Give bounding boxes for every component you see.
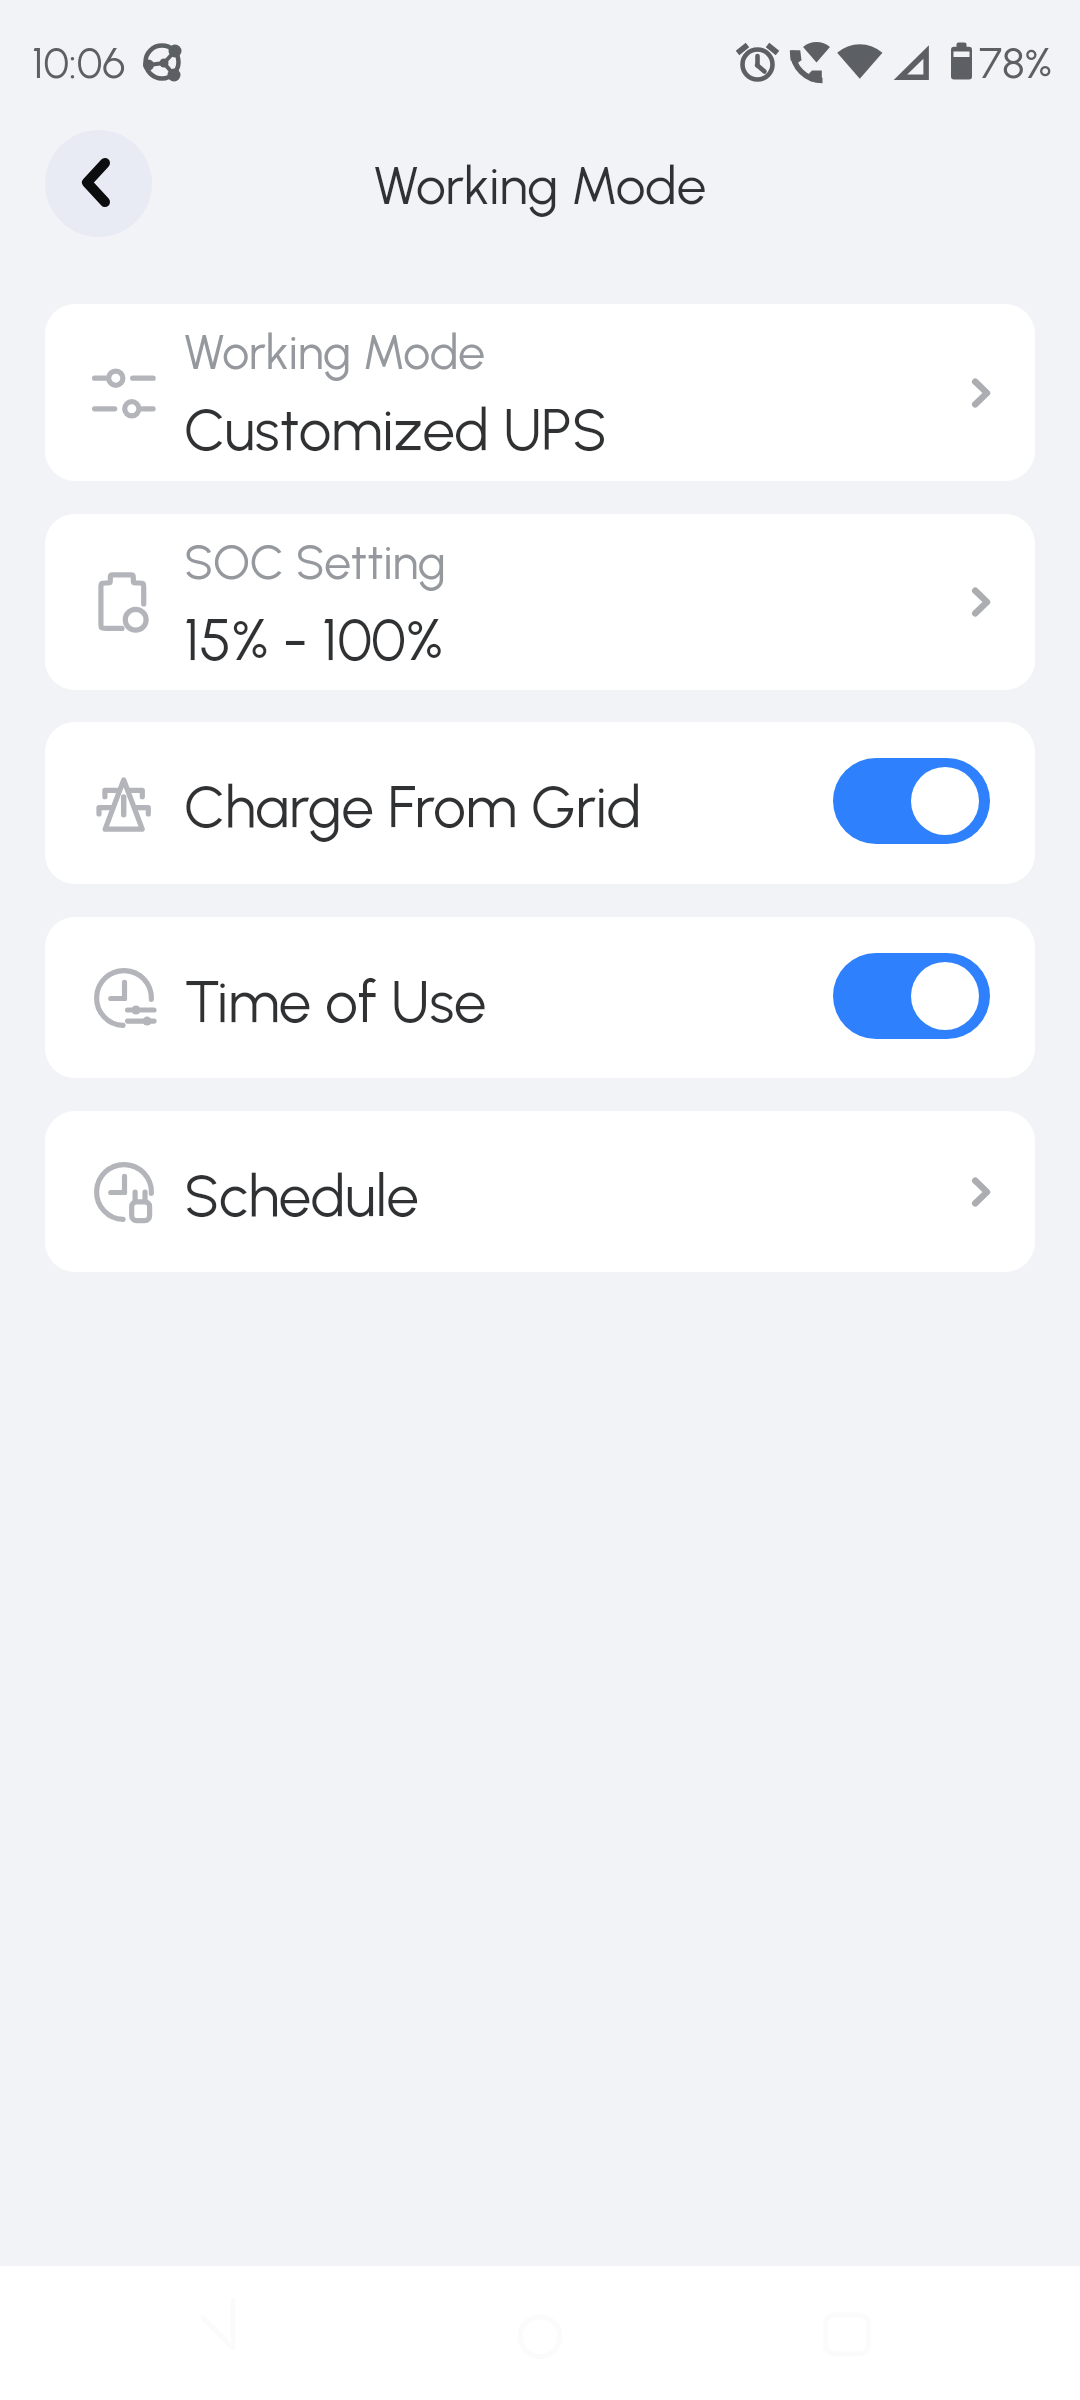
button[interactable]: Toggle Time of Use (833, 953, 990, 1039)
staticText: SOC Setting (184, 533, 446, 591)
staticText: Time of Use (184, 967, 487, 1037)
staticText: Charge From Grid (184, 772, 642, 842)
staticText: 78% (979, 37, 1053, 89)
button[interactable]: Working Mode (45, 304, 1035, 481)
button[interactable]: Charge From Grid (45, 722, 1035, 884)
button[interactable]: Toggle Charge From Grid (833, 758, 990, 844)
button[interactable]: Back (45, 130, 152, 237)
staticText: Customized UPS (184, 395, 608, 465)
button[interactable]: SOC Setting (45, 514, 1035, 690)
staticText: 15% - 100% (184, 605, 444, 675)
button[interactable]: Time of Use (45, 917, 1035, 1078)
staticText: Working Mode (184, 323, 486, 381)
staticText: Schedule (184, 1161, 419, 1231)
button[interactable]: Schedule (45, 1111, 1035, 1272)
staticText: 10:06 (32, 37, 126, 89)
staticText: Working Mode (0, 154, 1080, 218)
